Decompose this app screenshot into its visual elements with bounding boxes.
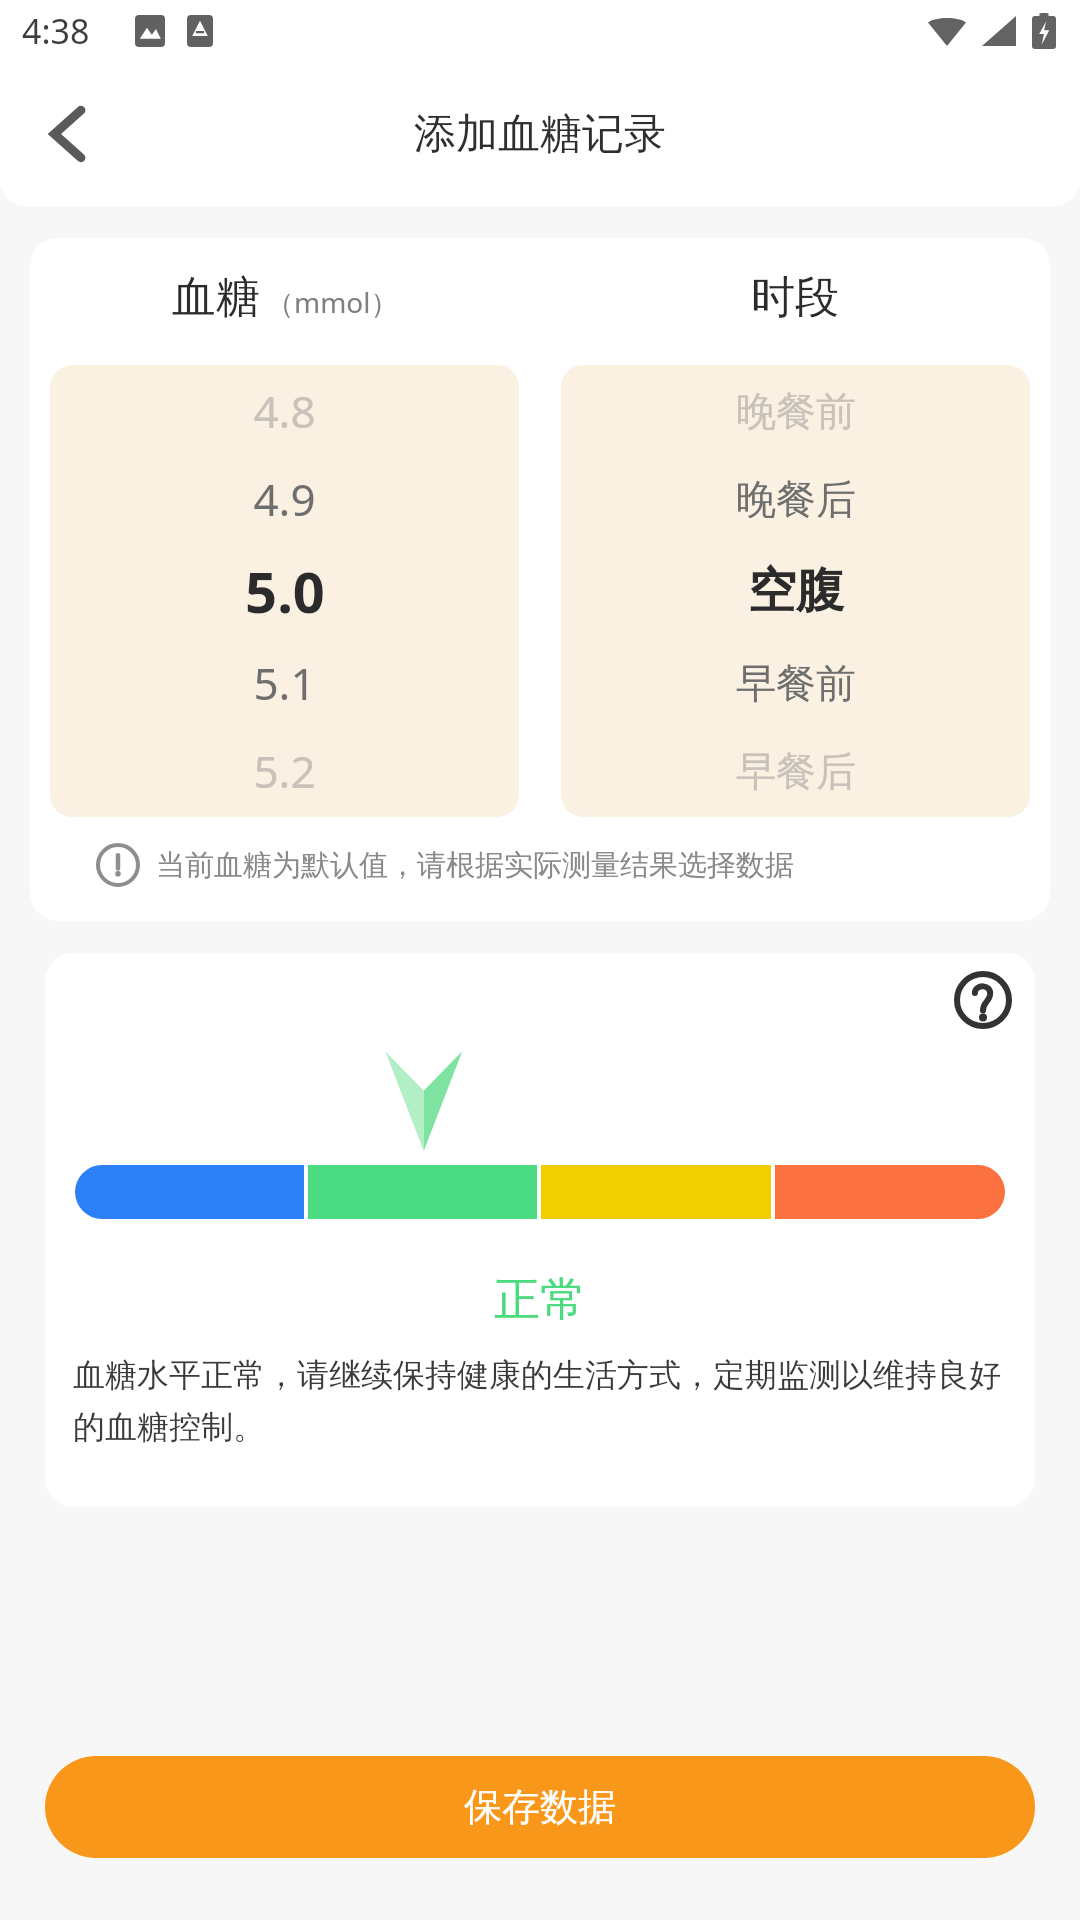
staticText: 4.9	[253, 469, 316, 529]
staticText: 时段	[751, 270, 839, 325]
staticText: （mmol）	[266, 283, 399, 321]
button[interactable]: 保存数据	[45, 1756, 1035, 1858]
staticText: 空腹	[748, 561, 844, 621]
staticText: 晚餐前	[736, 386, 856, 436]
staticText: 添加血糖记录	[414, 108, 666, 161]
button[interactable]: 晚餐前	[561, 365, 1030, 817]
staticText: 血糖水平正常，请继续保持健康的生活方式，定期监测以维持良好的血糖控制。	[73, 1355, 1007, 1447]
staticText: 晚餐后	[736, 474, 856, 524]
staticText: 正常	[45, 1271, 1035, 1329]
staticText: 5.0	[245, 553, 325, 629]
staticText: 血糖	[172, 270, 260, 325]
staticText: 早餐前	[736, 658, 856, 708]
staticText: 当前血糖为默认值，请根据实际测量结果选择数据	[156, 847, 794, 884]
staticText: 早餐后	[736, 746, 856, 796]
staticText: 4.8	[253, 381, 316, 441]
staticText: 5.2	[253, 741, 316, 801]
staticText: 4:38	[22, 8, 90, 54]
button[interactable]: 返回	[26, 92, 110, 176]
button[interactable]: 帮助	[949, 966, 1017, 1034]
button[interactable]: 4.8	[50, 365, 519, 817]
staticText: 5.1	[253, 653, 316, 713]
staticText: 保存数据	[464, 1783, 616, 1831]
